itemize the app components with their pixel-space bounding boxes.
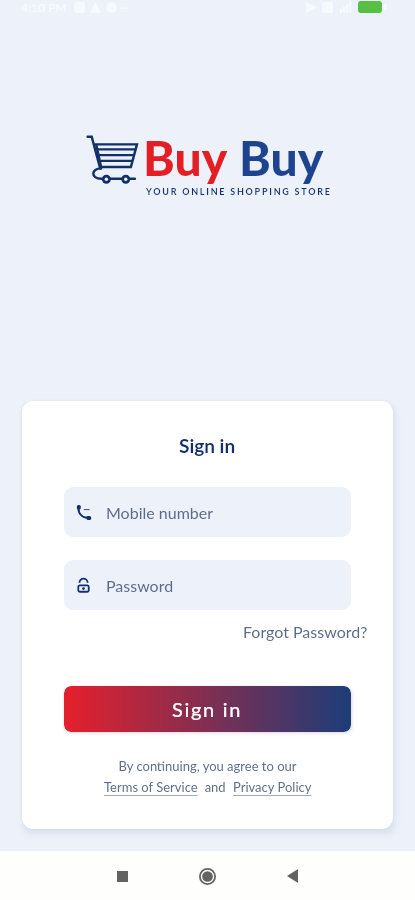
button[interactable]: Privacy Policy [233, 779, 312, 795]
staticText: Sign in [172, 697, 243, 721]
button[interactable]: Forgot Password? [243, 622, 368, 641]
staticText: YOUR ONLINE SHOPPING STORE [146, 186, 332, 197]
other: Shopping cart [87, 135, 138, 183]
button[interactable]: Home [185, 854, 229, 898]
button[interactable]: Mobile number [64, 487, 351, 537]
other: Mobile number [75, 504, 92, 521]
button[interactable]: Password [64, 560, 351, 610]
staticText: Password [106, 576, 174, 595]
button[interactable]: Back [270, 854, 314, 898]
button[interactable]: Terms of Service [104, 779, 198, 795]
button[interactable]: Recent apps [100, 854, 144, 898]
staticText: Mobile number [106, 503, 214, 522]
button[interactable]: Sign in [64, 686, 351, 732]
staticText: By continuing, you agree to our [118, 758, 297, 774]
staticText: 4:10 PM [21, 0, 67, 14]
staticText: and [198, 779, 233, 795]
other: Password [75, 577, 92, 594]
staticText: Buy [143, 129, 228, 187]
staticText: Buy [239, 129, 324, 187]
staticText: Sign in [179, 434, 236, 457]
